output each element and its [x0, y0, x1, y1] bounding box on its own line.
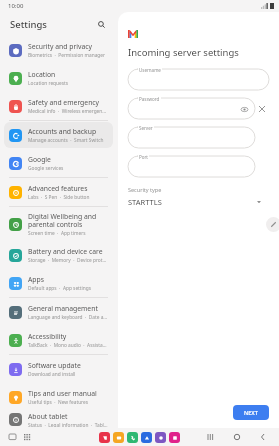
- button[interactable]: Edit: [266, 217, 279, 232]
- staticText: Server: [139, 125, 153, 131]
- button[interactable]: Advanced features: [4, 179, 113, 205]
- button[interactable]: Port: [128, 156, 255, 177]
- button[interactable]: Recents: [6, 431, 18, 443]
- button[interactable]: General management: [4, 299, 113, 325]
- button[interactable]: Password: [128, 98, 255, 119]
- button[interactable]: Battery and device care: [4, 242, 113, 268]
- staticText: Port: [139, 154, 148, 160]
- button[interactable]: Digital Wellbeing and parental controls: [4, 208, 113, 240]
- staticText: Default apps · App settings: [28, 285, 92, 292]
- button[interactable]: Assistant: [155, 432, 166, 443]
- button[interactable]: NEXT: [233, 405, 269, 420]
- staticText: STARTTLS: [128, 197, 162, 207]
- staticText: TalkBack · Mono audio · Assistant menu: [28, 342, 108, 349]
- button[interactable]: Security and privacy: [4, 37, 113, 63]
- staticText: Security and privacy: [28, 42, 92, 51]
- staticText: Apps: [28, 275, 44, 284]
- staticText: Labs · S Pen · Side button: [28, 194, 90, 201]
- staticText: Digital Wellbeing and parental controls: [28, 212, 108, 229]
- staticText: Accounts and backup: [28, 127, 97, 136]
- button[interactable]: Accessibility: [4, 327, 113, 353]
- button[interactable]: Phone: [127, 432, 138, 443]
- staticText: Location requests: [28, 80, 69, 87]
- staticText: Location: [28, 70, 56, 79]
- staticText: Screen time · App timers: [28, 230, 86, 237]
- staticText: Manage accounts · Smart Switch: [28, 137, 104, 144]
- staticText: NEXT: [244, 409, 258, 416]
- button[interactable]: Gallery: [169, 432, 180, 443]
- staticText: Language and keyboard · Date and time: [28, 314, 108, 321]
- staticText: About tablet: [28, 412, 68, 421]
- button[interactable]: Recent apps: [205, 431, 217, 443]
- button[interactable]: Server: [128, 127, 255, 148]
- button[interactable]: About tablet: [4, 412, 113, 427]
- button[interactable]: All apps: [21, 431, 33, 443]
- button[interactable]: Photo Editor: [99, 432, 110, 443]
- button[interactable]: Tips and user manual: [4, 384, 113, 410]
- button[interactable]: Apps: [4, 270, 113, 296]
- button[interactable]: Accounts and backup: [4, 122, 113, 148]
- button[interactable]: Google: [4, 150, 113, 176]
- button[interactable]: Software update: [4, 356, 113, 382]
- staticText: Username: [139, 67, 161, 73]
- button[interactable]: STARTTLS: [128, 197, 261, 207]
- staticText: Useful tips · New features: [28, 399, 89, 406]
- staticText: Accessibility: [28, 332, 67, 341]
- staticText: Advanced features: [28, 184, 88, 193]
- button[interactable]: Back: [257, 431, 269, 443]
- staticText: Storage · Memory · Device protection: [28, 257, 108, 264]
- button[interactable]: Location: [4, 65, 113, 91]
- button[interactable]: Home: [231, 431, 243, 443]
- button[interactable]: Clear password: [255, 102, 269, 116]
- button[interactable]: Show password: [239, 104, 249, 114]
- staticText: 10:00: [8, 2, 24, 10]
- button[interactable]: Safety and emergency: [4, 93, 113, 119]
- staticText: Software update: [28, 361, 81, 370]
- button[interactable]: Username: [128, 69, 269, 90]
- staticText: Security type: [128, 186, 162, 193]
- staticText: Status · Legal information · Tablet name: [28, 422, 108, 427]
- staticText: Google services: [28, 165, 64, 172]
- staticText: Settings: [10, 18, 47, 31]
- staticText: General management: [28, 304, 98, 313]
- staticText: Battery and device care: [28, 247, 103, 256]
- staticText: Google: [28, 155, 51, 164]
- staticText: Tips and user manual: [28, 389, 97, 398]
- button[interactable]: Drive: [141, 432, 152, 443]
- staticText: Medical info · Wireless emergency alerts: [28, 108, 108, 115]
- button[interactable]: Files: [113, 432, 124, 443]
- staticText: Safety and emergency: [28, 98, 100, 107]
- staticText: Password: [139, 96, 160, 102]
- staticText: Biometrics · Permission manager: [28, 52, 106, 59]
- staticText: Download and install: [28, 371, 76, 378]
- staticText: Incoming server settings: [128, 46, 239, 59]
- button[interactable]: Search: [93, 16, 109, 32]
